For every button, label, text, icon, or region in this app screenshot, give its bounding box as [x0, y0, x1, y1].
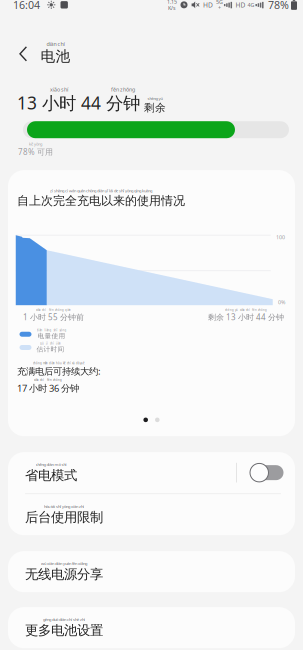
staticText: xiǎo shí fēn zhōng [34, 378, 62, 382]
staticText: xiǎo shí fēn zhōng qián [36, 308, 71, 312]
staticText: shěng diàn mó shì [35, 462, 66, 467]
button[interactable]: 返回 [0, 36, 40, 70]
staticText: hòu tái shǐ yòng xiàn zhì [44, 504, 84, 509]
staticText: 17 小时 36 分钟 [17, 382, 79, 394]
staticText: kě yòng [29, 141, 42, 146]
staticText: 小时 [42, 93, 76, 114]
staticText: wú xiàn diàn yuán fēn xiǎng [41, 561, 87, 566]
staticText: 电量使用 [37, 332, 65, 340]
staticText: gū jì shí jiān [40, 342, 61, 345]
staticText: 78% [268, 0, 289, 12]
staticText: 电池 [40, 47, 70, 65]
staticText: zì shàng cì wán quán chōng diàn yǐ lái d… [50, 188, 152, 193]
staticText: 后台使用限制 [25, 509, 103, 525]
button[interactable]: shěng diàn mó shì [8, 452, 295, 493]
staticText: 省电模式 [25, 467, 77, 483]
staticText: 78% 可用 [18, 146, 53, 157]
staticText: 0% [278, 299, 285, 306]
staticText: 分钟 [106, 93, 140, 114]
staticText: shèng yú xiǎo shí fēn zhōng [225, 308, 267, 312]
staticText: 剩余 [144, 101, 166, 114]
staticText: 1.15 [167, 0, 177, 5]
staticText: 自上次完全充电以来的使用情况 [17, 193, 185, 208]
button[interactable]: wú xiàn diàn yuán fēn xiǎng [8, 551, 295, 592]
staticText: diàn chí [46, 40, 64, 47]
button[interactable]: hòu tái shǐ yòng xiàn zhì [8, 494, 295, 535]
button[interactable]: gèng duō diàn chí shè zhì [8, 607, 295, 648]
staticText: 5G [216, 0, 223, 6]
staticText: gèng duō diàn chí shè zhì [43, 617, 85, 622]
staticText: + [218, 4, 221, 11]
staticText: xiǎo shí [50, 86, 68, 93]
staticText: 4G [247, 1, 254, 8]
staticText: 100 [276, 234, 285, 241]
staticText: 44 [81, 91, 101, 114]
staticText: HD [203, 0, 213, 9]
staticText: fēn zhōng [111, 86, 135, 93]
staticText: 16:04 [13, 0, 40, 12]
staticText: 剩余 13 小时 44 分钟 [208, 312, 284, 322]
staticText: 更多电池设置 [25, 622, 103, 638]
staticText: 13 [17, 91, 37, 114]
staticText: 估计时间 [36, 345, 64, 353]
staticText: 无线电源分享 [25, 566, 103, 582]
staticText: shèng yú [147, 96, 162, 101]
staticText: HD [235, 0, 245, 9]
staticText: chōng mǎn diàn hòu kě chí xù dà yuē [33, 361, 85, 365]
staticText: diàn liàng shǐ yòng [36, 328, 66, 332]
staticText: 1 小时 55 分钟前 [23, 312, 84, 322]
staticText: K/s [168, 4, 176, 11]
staticText: 充满电后可持续大约: [17, 365, 101, 377]
